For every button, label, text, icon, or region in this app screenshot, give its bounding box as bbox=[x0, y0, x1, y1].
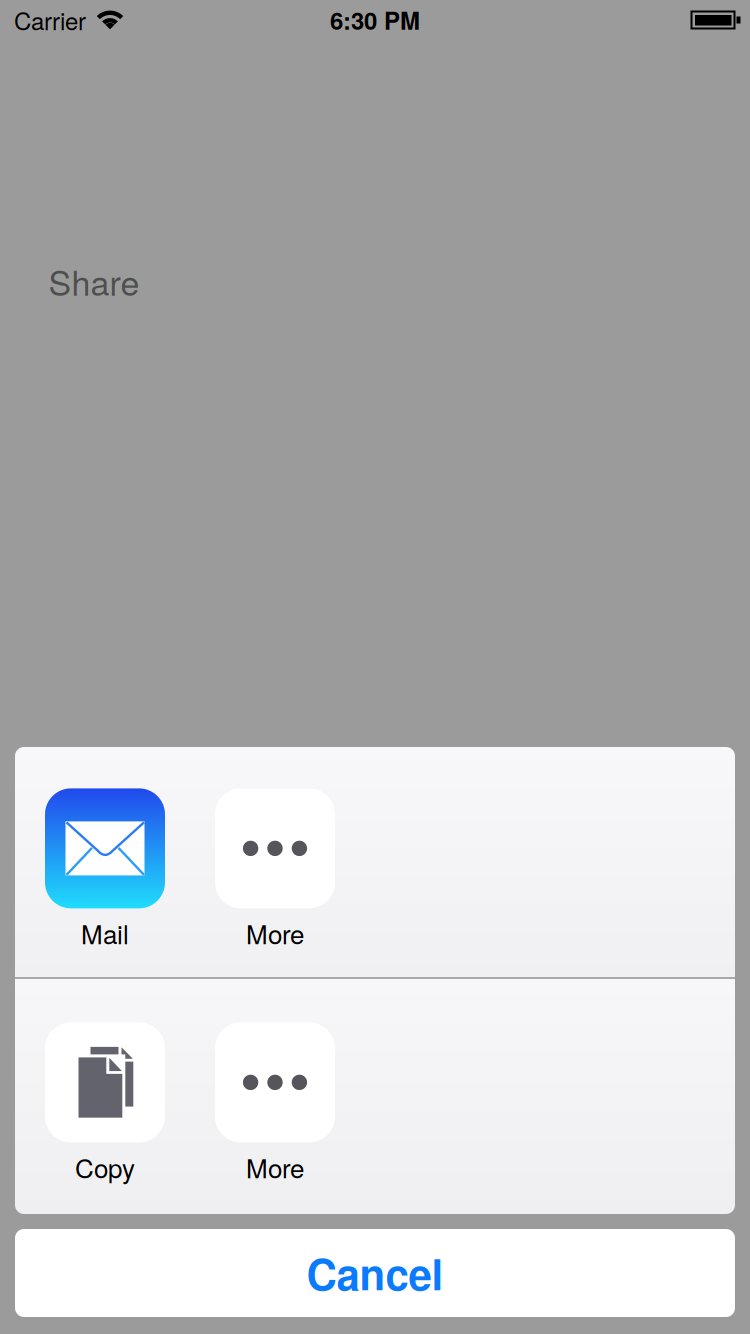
staticText: 6:30 PM bbox=[330, 3, 420, 37]
staticText: More bbox=[246, 914, 304, 952]
staticText: Copy bbox=[75, 1148, 135, 1186]
staticText: Cancel bbox=[306, 1243, 443, 1303]
button[interactable]: More bbox=[215, 788, 335, 952]
staticText: Share bbox=[48, 257, 139, 305]
button[interactable]: More bbox=[215, 1022, 335, 1186]
button[interactable]: Mail bbox=[45, 788, 165, 952]
staticText: More bbox=[246, 1148, 304, 1186]
button[interactable]: Cancel bbox=[15, 1229, 735, 1317]
button[interactable]: Copy bbox=[45, 1022, 165, 1186]
button[interactable]: Share bbox=[48, 257, 139, 305]
staticText: Mail bbox=[81, 914, 129, 952]
staticText: Carrier bbox=[14, 3, 86, 37]
